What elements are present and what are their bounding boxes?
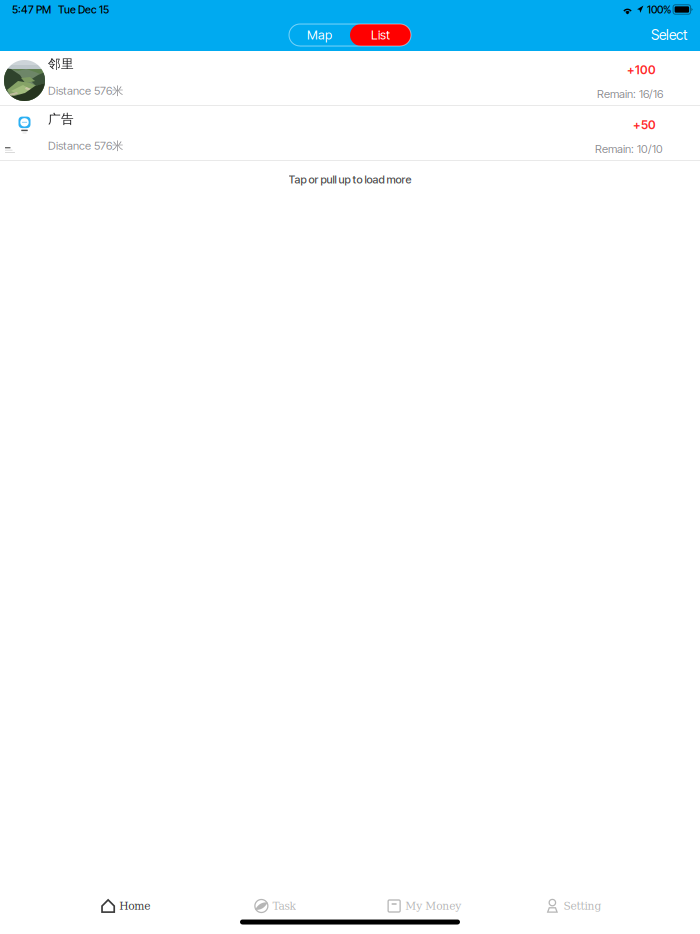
staticText: 广告 [48,111,74,127]
staticText: Remain: 16/16 [597,87,663,101]
staticText: Tap or pull up to load more [288,173,411,186]
staticText: Map [307,27,332,43]
button[interactable]: Tap or pull up to load more [0,161,700,198]
staticText: Select [651,26,687,43]
button[interactable]: Task [200,891,349,921]
staticText: My Money [405,900,461,912]
staticText: +100 [627,63,656,77]
staticText: +50 [633,118,656,132]
button[interactable]: 邻里 [0,51,700,105]
button[interactable]: 广告 [0,106,700,160]
button[interactable]: Select [638,20,700,49]
staticText: Task [272,900,295,912]
button[interactable]: List [350,24,411,46]
staticText: 100% [647,3,671,16]
staticText: Remain: 10/10 [595,142,663,156]
staticText: Distance 576米 [48,139,123,153]
staticText: Home [119,900,150,912]
staticText: 5:47 PM [12,3,51,16]
staticText: 邻里 [48,56,74,72]
staticText: List [371,27,390,43]
staticText: Distance 576米 [48,84,123,98]
button[interactable]: Map [289,24,350,46]
button[interactable]: Home [51,891,200,921]
button[interactable]: My Money [349,891,499,921]
staticText: Tue Dec 15 [58,3,109,16]
button[interactable]: Setting [499,891,648,921]
staticText: Setting [563,900,601,912]
